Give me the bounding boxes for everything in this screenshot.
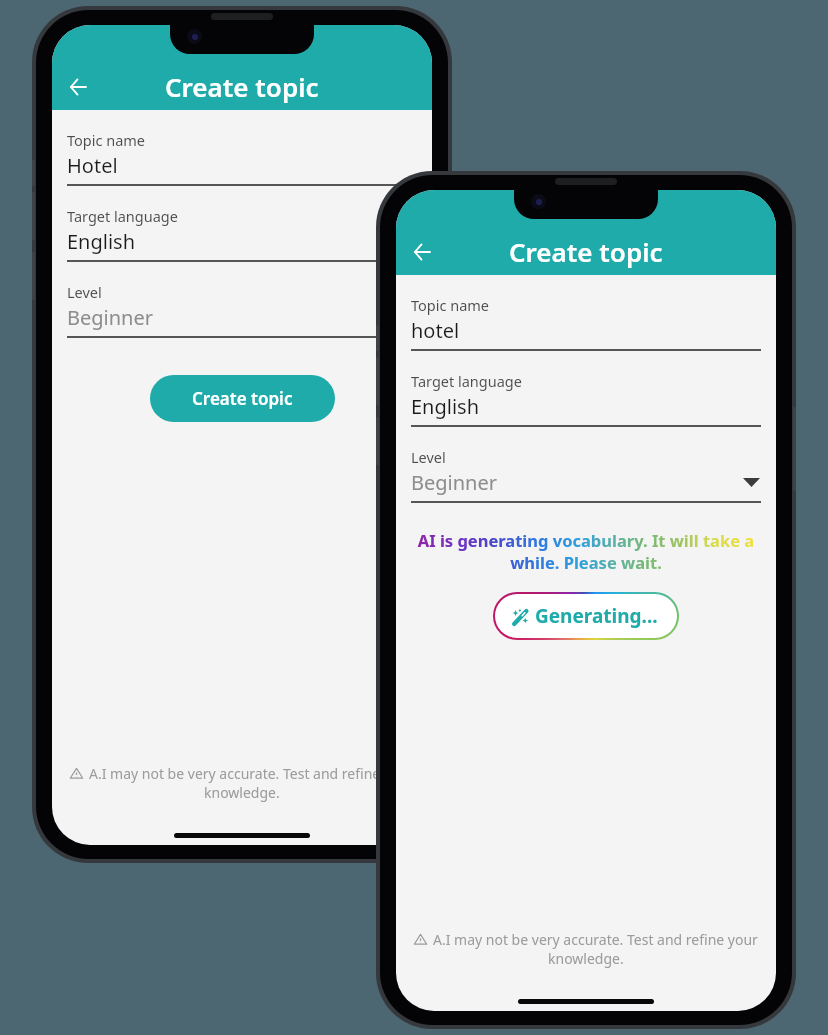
staticText: English xyxy=(67,228,136,255)
staticText: Generating... xyxy=(535,603,658,629)
staticText: Target language xyxy=(67,206,178,226)
staticText: Topic name xyxy=(411,295,490,315)
staticText: Level xyxy=(67,282,102,302)
staticText: Topic name xyxy=(67,130,146,150)
staticText: Create topic xyxy=(165,69,319,104)
staticText: knowledge. xyxy=(548,949,624,968)
staticText: hotel xyxy=(411,317,460,344)
staticText: knowledge. xyxy=(204,783,280,802)
staticText: Create topic xyxy=(509,234,663,269)
staticText: Beginner xyxy=(67,304,153,331)
staticText: Beginner xyxy=(411,469,497,496)
staticText: Create topic xyxy=(192,387,293,410)
button[interactable]: Generating... xyxy=(493,592,679,640)
staticText: A.I may not be very accurate. Test and r… xyxy=(89,764,414,783)
staticText: Level xyxy=(411,447,446,467)
button[interactable]: Back xyxy=(398,228,446,276)
button[interactable]: Create topic xyxy=(150,375,335,422)
button[interactable]: Back xyxy=(54,63,102,111)
staticText: Target language xyxy=(411,371,522,391)
staticText: AI is generating vocabulary. It will tak… xyxy=(417,529,755,573)
staticText: English xyxy=(411,393,480,420)
staticText: Hotel xyxy=(67,152,118,179)
staticText: A.I may not be very accurate. Test and r… xyxy=(433,930,758,949)
